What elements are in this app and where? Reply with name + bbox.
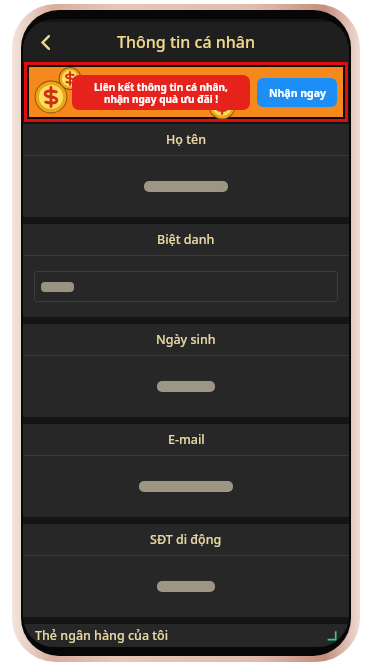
- button[interactable]: [34, 271, 338, 302]
- button[interactable]: E-mail: [23, 424, 349, 517]
- staticText: E-mail: [168, 431, 205, 448]
- staticText: Ngày sinh: [156, 331, 216, 348]
- staticText: Liên kết thông tin cá nhân, nhận ngay qu…: [94, 80, 228, 106]
- button[interactable]: Back: [28, 25, 62, 59]
- staticText: SĐT di động: [150, 531, 222, 548]
- staticText: Thẻ ngân hàng của tôi: [35, 627, 169, 644]
- staticText: Biệt danh: [157, 231, 215, 248]
- button[interactable]: Liên kết thông tin cá nhân, nhận ngay qu…: [29, 67, 343, 117]
- staticText: Họ tên: [166, 131, 207, 148]
- button[interactable]: Ngày sinh: [23, 324, 349, 417]
- button[interactable]: Biệt danh: [23, 224, 349, 317]
- staticText: Nhận ngay: [269, 86, 326, 100]
- staticText: Thông tin cá nhân: [117, 31, 255, 53]
- button[interactable]: SĐT di động: [23, 524, 349, 617]
- button[interactable]: Thẻ ngân hàng của tôi: [35, 624, 337, 647]
- button[interactable]: Họ tên: [23, 124, 349, 217]
- button[interactable]: Nhận ngay: [257, 78, 337, 107]
